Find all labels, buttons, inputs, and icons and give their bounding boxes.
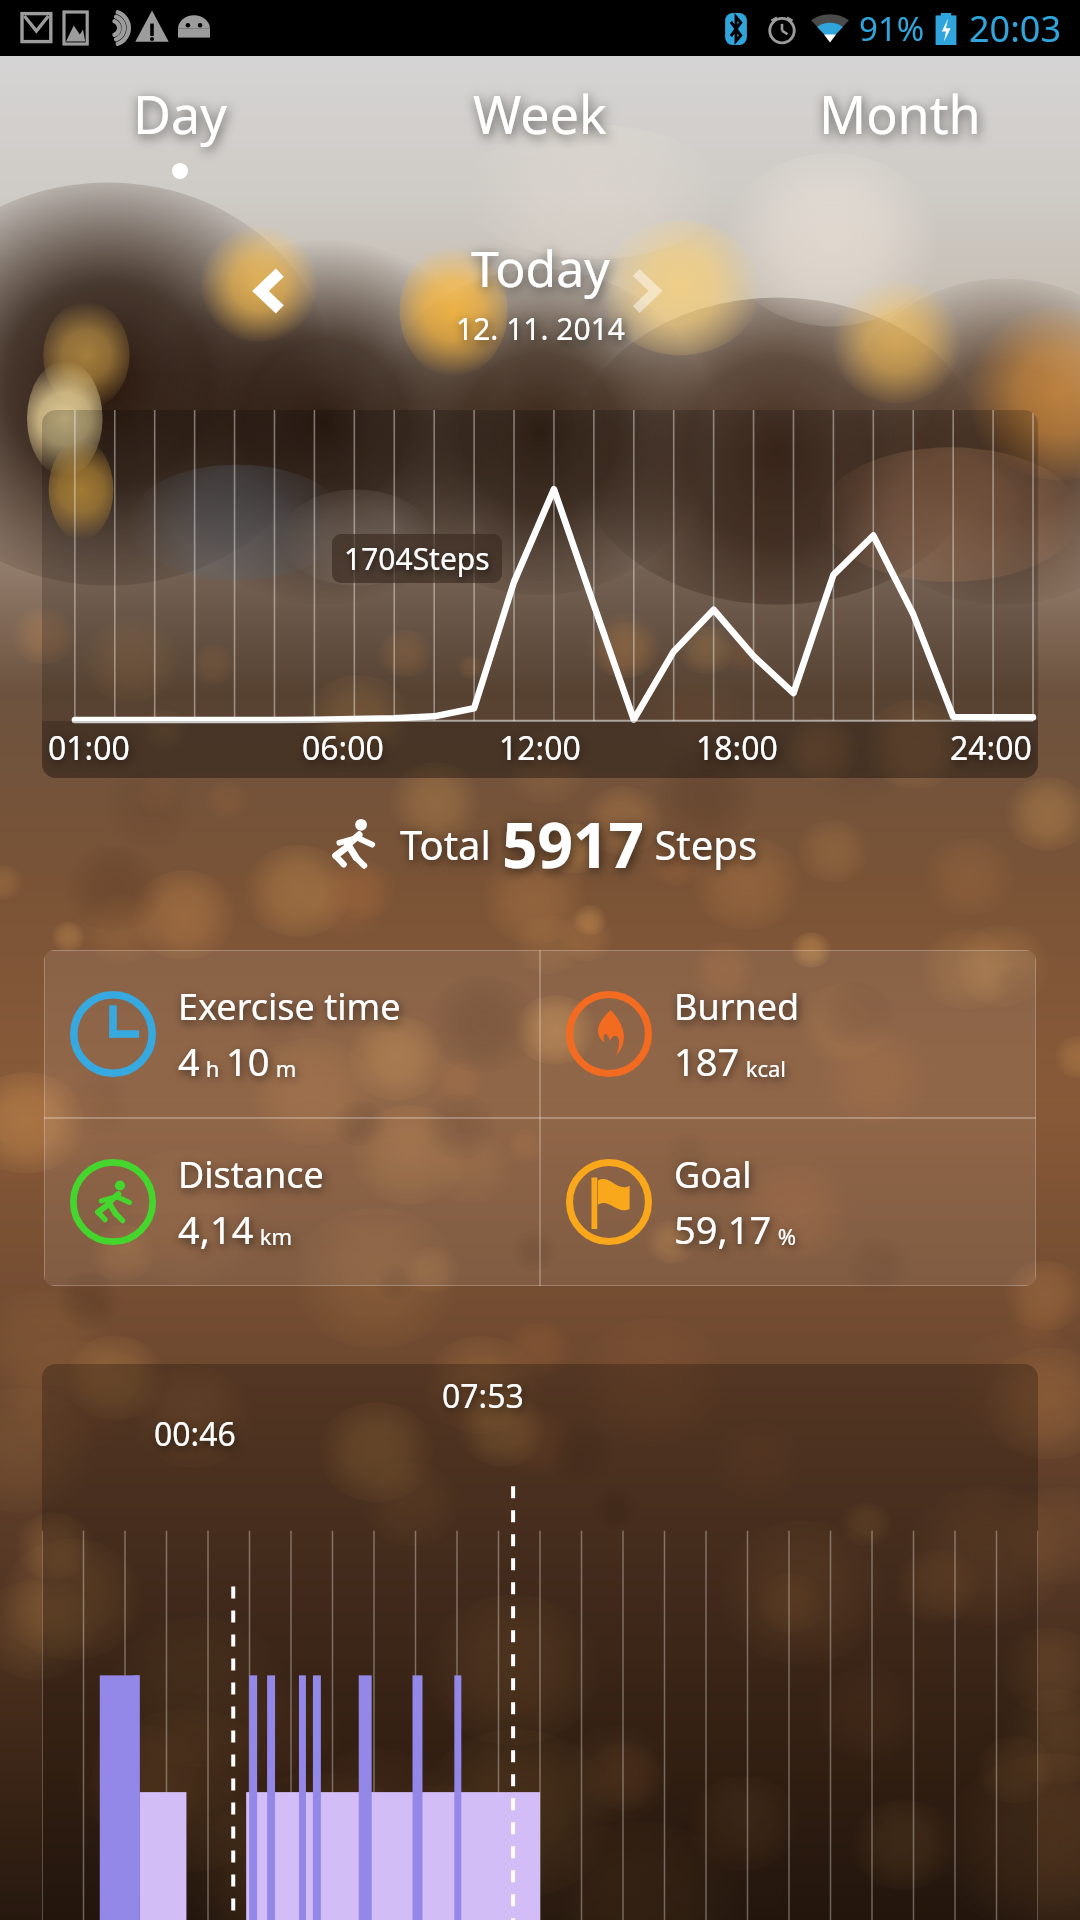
button[interactable]: Today — [456, 234, 625, 349]
staticText: Goal — [674, 1150, 752, 1199]
button[interactable]: Burned — [540, 950, 1036, 1118]
staticText: 01:00 — [48, 726, 130, 770]
staticText: Day — [133, 78, 227, 149]
staticText: 12. 11. 2014 — [456, 308, 625, 349]
staticText: km — [254, 1221, 293, 1251]
staticText: Week — [473, 78, 607, 149]
staticText: 10 — [226, 1035, 270, 1087]
staticText: 12:00 — [499, 726, 581, 770]
staticText: 1704Steps — [344, 538, 490, 579]
staticText: m — [270, 1053, 297, 1083]
staticText: 4 — [178, 1035, 200, 1087]
staticText: Exercise time — [178, 982, 401, 1031]
staticText: 20:03 — [969, 4, 1062, 53]
staticText: Today — [471, 234, 610, 302]
button[interactable]: Previous day — [228, 248, 314, 334]
staticText: h — [200, 1053, 226, 1083]
staticText: Burned — [674, 982, 800, 1031]
button[interactable]: Total — [0, 802, 1080, 886]
staticText: Steps — [644, 817, 758, 871]
staticText: Distance — [178, 1150, 324, 1199]
button[interactable]: Exercise time — [44, 950, 540, 1118]
staticText: 06:00 — [302, 726, 384, 770]
button[interactable]: Next day — [602, 248, 688, 334]
staticText: 187 — [674, 1035, 740, 1087]
staticText: 59,17 — [674, 1203, 772, 1255]
button[interactable]: 1704Steps — [42, 410, 1038, 778]
staticText: 00:46 — [154, 1412, 236, 1456]
staticText: 18:00 — [696, 726, 778, 770]
button[interactable]: Week — [360, 78, 720, 206]
staticText: 91% — [859, 6, 925, 51]
staticText: 24:00 — [950, 726, 1032, 770]
staticText: 5917 — [502, 802, 644, 886]
button[interactable]: Day — [0, 78, 360, 206]
staticText: Total — [400, 817, 502, 871]
button[interactable]: Goal — [540, 1118, 1036, 1286]
staticText: Month — [819, 78, 981, 149]
staticText: 4,14 — [178, 1203, 254, 1255]
button[interactable]: Distance — [44, 1118, 540, 1286]
staticText: 07:53 — [442, 1374, 524, 1418]
staticText: kcal — [740, 1053, 787, 1083]
button[interactable]: Month — [720, 78, 1080, 206]
staticText: % — [772, 1221, 797, 1251]
button[interactable]: 00:46 — [42, 1364, 1038, 1920]
